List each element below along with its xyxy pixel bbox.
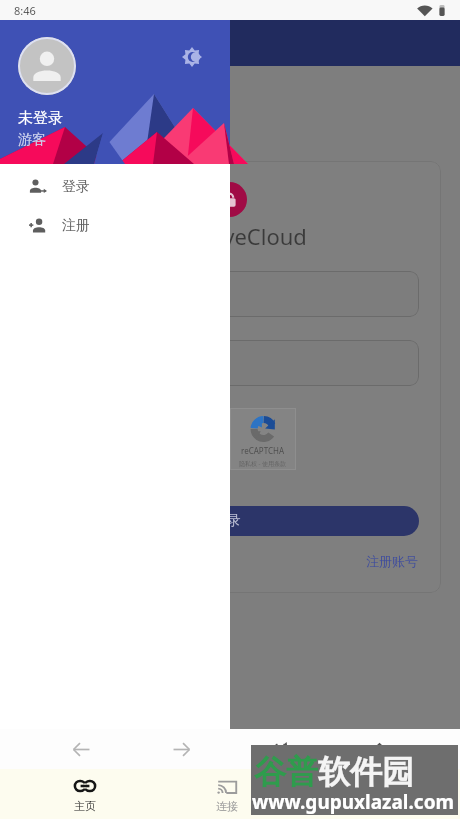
staticText: reCAPTCHA	[241, 445, 285, 456]
staticText: 注册	[62, 217, 90, 235]
button[interactable]: 连接	[156, 769, 298, 819]
button[interactable]: Back	[61, 729, 101, 769]
button[interactable]: Forward	[161, 729, 201, 769]
staticText: FisheyeCloud	[170, 221, 307, 251]
staticText: 谷普	[254, 752, 318, 792]
button[interactable]: 主页	[14, 769, 156, 819]
button[interactable]: Home	[359, 729, 399, 769]
button[interactable]: Toggle dark mode	[172, 37, 212, 77]
button[interactable]	[34, 271, 419, 317]
staticText: www.gupuxlazal.com	[252, 789, 455, 815]
button[interactable]: Reload	[260, 729, 300, 769]
staticText: 主页	[74, 799, 96, 813]
staticText: 登录	[213, 512, 241, 530]
staticText: 连接	[216, 799, 238, 813]
staticText: 8:46	[14, 3, 36, 18]
staticText: 软件园	[318, 752, 414, 792]
button[interactable]: 注册	[0, 206, 230, 245]
staticText: 游客	[18, 131, 46, 149]
staticText: 未登录	[18, 109, 63, 128]
button[interactable]: 登录	[34, 506, 419, 536]
staticText: 登录	[62, 178, 90, 196]
staticText: 隐私权 - 使用条款	[239, 460, 287, 468]
button[interactable]	[34, 340, 419, 386]
button[interactable]: 注册账号	[366, 553, 418, 569]
button[interactable]: 登录	[0, 167, 230, 206]
